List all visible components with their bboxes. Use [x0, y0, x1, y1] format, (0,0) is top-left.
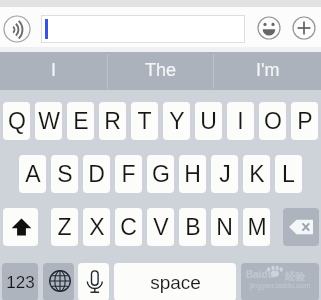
button[interactable]: I: [0, 52, 107, 90]
button[interactable]: O: [259, 102, 286, 140]
button[interactable]: Switch keyboard: [43, 263, 74, 300]
button[interactable]: [41, 15, 245, 43]
staticText: R: [104, 108, 121, 134]
staticText: O: [264, 108, 282, 134]
staticText: C: [120, 214, 137, 240]
button[interactable]: Emoji: [257, 16, 281, 40]
button[interactable]: H: [179, 155, 206, 193]
button[interactable]: B: [179, 208, 206, 246]
button[interactable]: R: [99, 102, 126, 140]
button[interactable]: X: [83, 208, 110, 246]
staticText: 123: [6, 273, 35, 292]
staticText: J: [219, 161, 231, 187]
staticText: G: [152, 161, 170, 187]
staticText: I'm: [256, 60, 280, 80]
staticText: H: [184, 161, 201, 187]
staticText: Y: [169, 108, 185, 134]
staticText: W: [38, 108, 60, 134]
staticText: T: [137, 108, 152, 134]
staticText: Z: [57, 214, 72, 240]
staticText: U: [200, 108, 217, 134]
button[interactable]: I'm: [214, 52, 321, 90]
button[interactable]: W: [35, 102, 62, 140]
staticText: N: [216, 214, 233, 240]
staticText: I: [51, 60, 57, 80]
button[interactable]: M: [243, 208, 270, 246]
button[interactable]: The: [107, 52, 214, 90]
staticText: Baidu: [246, 269, 274, 280]
button[interactable]: Y: [163, 102, 190, 140]
button[interactable]: [241, 263, 319, 300]
button[interactable]: J: [211, 155, 238, 193]
button[interactable]: T: [131, 102, 158, 140]
button[interactable]: N: [211, 208, 238, 246]
button[interactable]: Shift: [3, 208, 38, 246]
staticText: D: [88, 161, 105, 187]
staticText: jingyan.baidu.com: [250, 281, 311, 289]
button[interactable]: I: [227, 102, 254, 140]
staticText: E: [73, 108, 89, 134]
button[interactable]: Add attachment: [292, 16, 316, 40]
staticText: L: [282, 161, 295, 187]
staticText: M: [247, 214, 267, 240]
button[interactable]: U: [195, 102, 222, 140]
button[interactable]: 123: [2, 263, 38, 300]
staticText: B: [185, 214, 201, 240]
button[interactable]: P: [291, 102, 318, 140]
staticText: K: [249, 161, 265, 187]
button[interactable]: Backspace: [283, 208, 319, 246]
staticText: 经验: [285, 270, 305, 283]
button[interactable]: V: [147, 208, 174, 246]
button[interactable]: D: [83, 155, 110, 193]
staticText: A: [25, 161, 41, 187]
button[interactable]: Voice dictation: [78, 263, 109, 300]
button[interactable]: A: [19, 155, 46, 193]
button[interactable]: K: [243, 155, 270, 193]
staticText: S: [57, 161, 73, 187]
staticText: Q: [8, 108, 26, 134]
button[interactable]: G: [147, 155, 174, 193]
button[interactable]: F: [115, 155, 142, 193]
staticText: F: [121, 161, 136, 187]
button[interactable]: L: [275, 155, 302, 193]
button[interactable]: Z: [51, 208, 78, 246]
staticText: The: [145, 60, 177, 80]
staticText: P: [297, 108, 313, 134]
button[interactable]: Q: [3, 102, 30, 140]
staticText: X: [89, 214, 105, 240]
staticText: V: [153, 214, 169, 240]
staticText: I: [237, 108, 244, 134]
button[interactable]: E: [67, 102, 94, 140]
button[interactable]: Voice input: [3, 15, 31, 43]
staticText: space: [150, 272, 201, 293]
button[interactable]: C: [115, 208, 142, 246]
button[interactable]: S: [51, 155, 78, 193]
button[interactable]: space: [114, 263, 236, 300]
